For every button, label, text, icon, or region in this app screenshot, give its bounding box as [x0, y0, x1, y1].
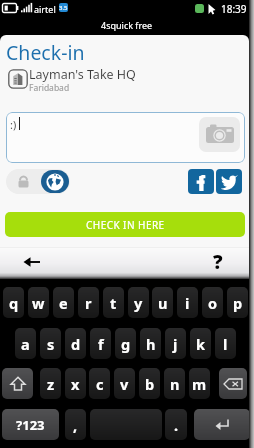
button[interactable]: t: [103, 287, 124, 318]
staticText: m: [192, 374, 207, 394]
button[interactable]: Backspace: [219, 368, 247, 399]
button[interactable]: y: [128, 287, 149, 318]
staticText: Check-in: [6, 39, 85, 66]
button[interactable]: s: [40, 328, 61, 359]
button[interactable]: Enter: [194, 409, 250, 440]
staticText: x: [71, 374, 80, 394]
button[interactable]: v: [114, 368, 135, 399]
button[interactable]: Take photo: [199, 117, 240, 152]
button[interactable]: Share to Facebook: [188, 169, 214, 194]
staticText: f: [98, 334, 104, 354]
button[interactable]: .: [165, 409, 187, 440]
staticText: 3.5: [59, 4, 68, 12]
button[interactable]: k: [190, 328, 211, 359]
staticText: i: [185, 293, 190, 313]
staticText: Layman's Take HQ: [29, 66, 136, 83]
button[interactable]: n: [164, 368, 185, 399]
button[interactable]: ?123: [2, 409, 59, 440]
button[interactable]: u: [152, 287, 173, 318]
button[interactable]: z: [40, 368, 61, 399]
staticText: c: [96, 374, 104, 394]
button[interactable]: Help: [206, 249, 230, 273]
button[interactable]: Back: [19, 250, 43, 274]
staticText: j: [173, 334, 178, 354]
staticText: ?: [213, 249, 223, 273]
staticText: ?123: [16, 416, 45, 434]
button[interactable]: r: [78, 287, 99, 318]
button[interactable]: Space: [90, 409, 162, 440]
staticText: h: [146, 334, 156, 354]
button[interactable]: g: [115, 328, 136, 359]
button[interactable]: Privacy setting: [6, 169, 70, 194]
staticText: r: [85, 293, 92, 313]
staticText: l: [223, 334, 228, 354]
staticText: .: [174, 415, 179, 435]
staticText: 18:39: [221, 2, 247, 16]
staticText: e: [59, 293, 68, 313]
button[interactable]: c: [89, 368, 110, 399]
button[interactable]: h: [140, 328, 161, 359]
staticText: w: [32, 293, 45, 313]
button[interactable]: m: [189, 368, 210, 399]
staticText: o: [208, 293, 218, 313]
staticText: v: [120, 374, 129, 394]
button[interactable]: a: [15, 328, 36, 359]
staticText: a: [21, 334, 30, 354]
button[interactable]: x: [65, 368, 86, 399]
staticText: q: [9, 293, 19, 313]
button[interactable]: CHECK IN HERE: [5, 212, 245, 237]
staticText: d: [71, 334, 81, 354]
button[interactable]: Layman's Take HQ: [5, 66, 185, 92]
button[interactable]: w: [28, 287, 49, 318]
button[interactable]: l: [215, 328, 236, 359]
button[interactable]: q: [3, 287, 24, 318]
staticText: y: [134, 293, 143, 313]
button[interactable]: ,: [65, 409, 86, 440]
staticText: t: [110, 293, 117, 313]
staticText: n: [170, 374, 180, 394]
button[interactable]: p: [227, 287, 248, 318]
button[interactable]: e: [53, 287, 74, 318]
staticText: p: [233, 293, 243, 313]
button[interactable]: j: [165, 328, 186, 359]
button[interactable]: o: [202, 287, 223, 318]
button[interactable]: d: [65, 328, 86, 359]
staticText: z: [47, 374, 55, 394]
button[interactable]: f: [90, 328, 111, 359]
staticText: 4squick free: [101, 19, 153, 31]
button[interactable]: :): [6, 112, 245, 163]
staticText: b: [145, 374, 155, 394]
staticText: k: [196, 334, 205, 354]
button[interactable]: i: [177, 287, 198, 318]
staticText: airtel: [34, 3, 56, 15]
button[interactable]: Shift: [2, 368, 33, 399]
staticText: g: [121, 334, 131, 354]
staticText: s: [47, 334, 55, 354]
staticText: u: [158, 293, 168, 313]
staticText: CHECK IN HERE: [86, 218, 165, 232]
button[interactable]: Share to Twitter: [216, 169, 242, 194]
staticText: :): [10, 117, 17, 132]
staticText: Faridabad: [29, 82, 70, 94]
button[interactable]: b: [139, 368, 160, 399]
staticText: ,: [73, 415, 78, 435]
